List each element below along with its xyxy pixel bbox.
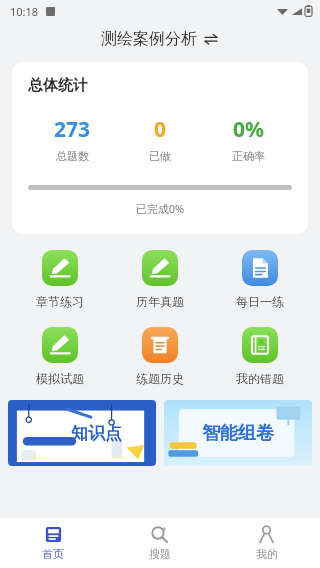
button[interactable]: 章节练习 bbox=[10, 248, 110, 311]
button[interactable]: 搜题 bbox=[106, 520, 213, 566]
staticText: 每日一练 bbox=[236, 294, 284, 309]
button[interactable]: 每日一练 bbox=[210, 248, 310, 311]
staticText: 练题历史 bbox=[136, 371, 184, 386]
button[interactable]: 首页 bbox=[0, 520, 106, 566]
staticText: 知识点 bbox=[71, 423, 122, 444]
staticText: 模拟试题 bbox=[36, 371, 84, 386]
staticText: 已完成0% bbox=[28, 201, 292, 216]
button[interactable]: 总体统计 bbox=[12, 62, 308, 234]
staticText: 273 bbox=[54, 115, 91, 144]
button[interactable]: 切换科目 bbox=[203, 31, 219, 47]
staticText: 搜题 bbox=[149, 547, 171, 561]
staticText: 0% bbox=[233, 115, 264, 144]
button[interactable]: 我的 bbox=[213, 520, 320, 566]
staticText: 历年真题 bbox=[136, 294, 184, 309]
staticText: 0 bbox=[154, 115, 167, 144]
button[interactable]: 智能组卷 bbox=[164, 400, 312, 466]
button[interactable]: 知识点 bbox=[8, 400, 156, 466]
button[interactable]: 模拟试题 bbox=[10, 325, 110, 388]
staticText: 我的错题 bbox=[236, 371, 284, 386]
staticText: 10:18 bbox=[10, 4, 39, 19]
staticText: 章节练习 bbox=[36, 294, 84, 309]
staticText: 正确率 bbox=[232, 149, 265, 163]
staticText: 首页 bbox=[42, 547, 64, 561]
staticText: 测绘案例分析 bbox=[101, 29, 197, 49]
staticText: 智能组卷 bbox=[202, 422, 274, 445]
button[interactable]: 我的错题 bbox=[210, 325, 310, 388]
staticText: 已做 bbox=[149, 149, 171, 163]
staticText: 我的 bbox=[256, 547, 278, 561]
button[interactable]: 历年真题 bbox=[110, 248, 210, 311]
button[interactable]: 练题历史 bbox=[110, 325, 210, 388]
staticText: 总体统计 bbox=[28, 76, 88, 95]
staticText: 总题数 bbox=[56, 149, 89, 163]
